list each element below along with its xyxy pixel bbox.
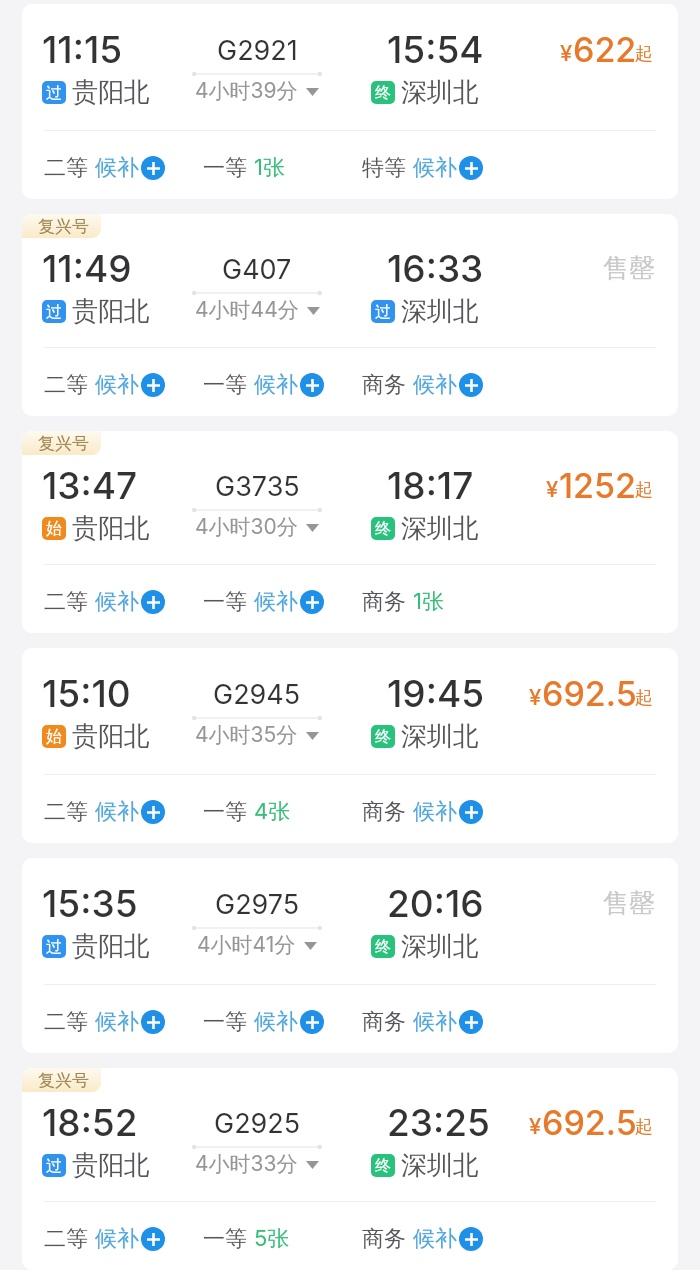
staticText: 4小时39分 [195, 78, 298, 105]
staticText: 11:15 [42, 27, 123, 72]
button[interactable]: 一等 [203, 1225, 362, 1253]
staticText: 起 [635, 687, 653, 710]
staticText: G2975 [215, 888, 300, 921]
staticText: 候补 [95, 588, 139, 616]
staticText: 1252 [559, 465, 637, 506]
staticText: 候补 [95, 371, 139, 399]
staticText: ¥ [560, 40, 573, 67]
button[interactable]: 复兴号 [22, 431, 678, 633]
button[interactable]: 二等 [44, 1008, 203, 1036]
staticText: 商务 [362, 1225, 406, 1253]
staticText: 贵阳北 [72, 720, 150, 753]
staticText: 4张 [254, 798, 291, 826]
button[interactable]: 一等 [203, 588, 362, 616]
staticText: G2945 [213, 678, 301, 711]
staticText: 692.5 [542, 1102, 637, 1143]
staticText: 候补 [254, 588, 298, 616]
button[interactable]: 商务 [362, 1225, 521, 1253]
staticText: 终 [375, 519, 391, 539]
button[interactable]: 一等 [203, 371, 362, 399]
staticText: 4小时41分 [197, 932, 296, 959]
staticText: 终 [375, 1156, 391, 1176]
staticText: 终 [375, 937, 391, 957]
staticText: 16:33 [387, 246, 484, 291]
staticText: 1张 [254, 154, 285, 182]
staticText: 售罄 [603, 252, 655, 285]
staticText: 622 [573, 29, 637, 70]
button[interactable]: 特等 [362, 154, 521, 182]
staticText: ¥ [529, 1113, 542, 1140]
staticText: 深圳北 [401, 930, 479, 963]
staticText: 贵阳北 [72, 930, 150, 963]
staticText: 19:45 [387, 671, 485, 716]
button[interactable]: 商务 [362, 798, 521, 826]
staticText: 二等 [44, 154, 88, 182]
staticText: 一等 [203, 588, 247, 616]
button[interactable]: 一等 [203, 798, 362, 826]
staticText: 候补 [413, 798, 457, 826]
staticText: 候补 [254, 371, 298, 399]
button[interactable]: 复兴号 [22, 1068, 678, 1270]
staticText: 18:52 [42, 1100, 138, 1145]
button[interactable]: 15:10 [22, 648, 678, 843]
staticText: 起 [635, 43, 653, 66]
staticText: 4小时30分 [195, 514, 298, 541]
staticText: G2925 [214, 1107, 301, 1140]
staticText: 二等 [44, 371, 88, 399]
staticText: 深圳北 [401, 720, 479, 753]
staticText: 终 [375, 83, 391, 103]
button[interactable]: 11:15 [22, 4, 678, 199]
button[interactable]: 一等 [203, 154, 362, 182]
staticText: 二等 [44, 588, 88, 616]
staticText: G3735 [215, 470, 300, 503]
button[interactable]: 二等 [44, 1225, 203, 1253]
staticText: 始 [46, 727, 62, 747]
staticText: 商务 [362, 371, 406, 399]
button[interactable]: 商务 [362, 371, 521, 399]
button[interactable]: 商务 [362, 588, 521, 616]
staticText: 11:49 [42, 246, 132, 291]
staticText: 深圳北 [401, 295, 479, 328]
staticText: 15:10 [42, 671, 131, 716]
staticText: 候补 [254, 1008, 298, 1036]
button[interactable]: 二等 [44, 154, 203, 182]
staticText: 特等 [362, 154, 406, 182]
staticText: 过 [46, 302, 62, 322]
staticText: 20:16 [387, 881, 484, 926]
staticText: 一等 [203, 1225, 247, 1253]
staticText: ¥ [546, 476, 559, 503]
staticText: 15:35 [42, 881, 138, 926]
staticText: 贵阳北 [72, 1149, 150, 1182]
staticText: 复兴号 [38, 216, 89, 237]
button[interactable]: 一等 [203, 1008, 362, 1036]
staticText: 售罄 [603, 887, 655, 920]
staticText: 一等 [203, 154, 247, 182]
staticText: 692.5 [542, 673, 637, 714]
button[interactable]: 复兴号 [22, 214, 678, 416]
button[interactable]: 二等 [44, 371, 203, 399]
staticText: 1张 [413, 588, 444, 616]
staticText: 一等 [203, 1008, 247, 1036]
button[interactable]: 商务 [362, 1008, 521, 1036]
staticText: 起 [635, 1116, 653, 1139]
button[interactable]: 15:35 [22, 858, 678, 1053]
staticText: 候补 [413, 1008, 457, 1036]
staticText: 终 [375, 727, 391, 747]
staticText: 4小时33分 [195, 1151, 298, 1178]
staticText: 过 [46, 1156, 62, 1176]
staticText: 18:17 [387, 463, 474, 508]
staticText: 候补 [95, 154, 139, 182]
staticText: 15:54 [387, 27, 484, 72]
staticText: 始 [46, 519, 62, 539]
staticText: 候补 [95, 1225, 139, 1253]
staticText: 23:25 [387, 1100, 490, 1145]
staticText: 一等 [203, 371, 247, 399]
staticText: 二等 [44, 798, 88, 826]
staticText: 候补 [413, 154, 457, 182]
staticText: 候补 [413, 371, 457, 399]
button[interactable]: 二等 [44, 798, 203, 826]
staticText: 贵阳北 [72, 512, 150, 545]
button[interactable]: 二等 [44, 588, 203, 616]
staticText: 4小时44分 [195, 297, 299, 324]
staticText: ¥ [529, 684, 542, 711]
